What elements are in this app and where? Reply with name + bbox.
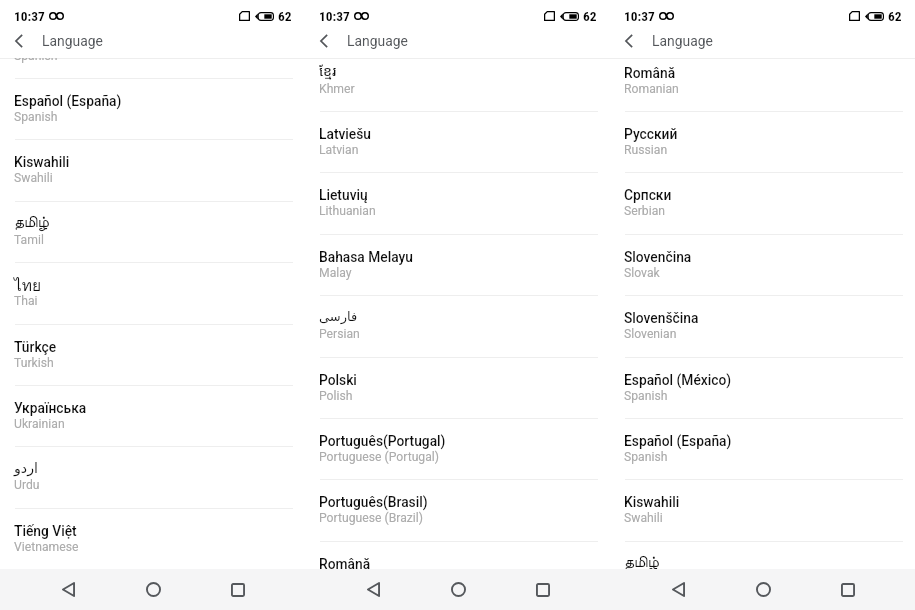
- staticText: Português(Brasil): [319, 494, 428, 510]
- button[interactable]: Back: [613, 25, 644, 56]
- staticText: Language: [42, 33, 103, 49]
- staticText: 10:37: [624, 9, 655, 25]
- button[interactable]: Kiswahili: [0, 139, 305, 200]
- staticText: ไทย: [14, 273, 42, 298]
- button[interactable]: Español (España): [0, 78, 305, 139]
- staticText: Polish: [319, 389, 353, 403]
- staticText: தமிழ்: [14, 215, 49, 231]
- staticText: Romanian: [624, 82, 679, 96]
- button[interactable]: Српски: [610, 172, 915, 233]
- staticText: Русский: [624, 126, 678, 142]
- button[interactable]: فارسی: [305, 295, 610, 356]
- staticText: Slovenian: [624, 327, 677, 341]
- staticText: Polski: [319, 372, 357, 388]
- staticText: Portuguese (Brazil): [319, 511, 423, 525]
- button[interactable]: Português(Brasil): [305, 479, 610, 540]
- staticText: 62: [278, 9, 292, 25]
- staticText: Português(Portugal): [319, 433, 446, 449]
- staticText: Ukrainian: [14, 417, 65, 431]
- staticText: Persian: [319, 327, 360, 341]
- button[interactable]: ខ្មែរ: [305, 58, 610, 111]
- staticText: Latvian: [319, 143, 359, 157]
- staticText: 62: [888, 9, 902, 25]
- staticText: Swahili: [14, 171, 53, 185]
- staticText: 62: [583, 9, 597, 25]
- staticText: Kiswahili: [14, 154, 70, 170]
- button[interactable]: Latviešu: [305, 111, 610, 172]
- staticText: اردو: [14, 460, 38, 477]
- button[interactable]: Українська: [0, 385, 305, 446]
- staticText: Slovenčina: [624, 249, 692, 265]
- button[interactable]: Polski: [305, 357, 610, 418]
- staticText: Thai: [14, 294, 38, 308]
- button[interactable]: Recent apps: [205, 569, 271, 610]
- staticText: தமிழ்: [624, 555, 659, 569]
- staticText: Spanish: [14, 110, 58, 124]
- staticText: Română: [624, 65, 676, 81]
- staticText: Language: [652, 33, 713, 49]
- staticText: Serbian: [624, 204, 665, 218]
- button[interactable]: Română: [610, 58, 915, 111]
- button[interactable]: Home: [425, 569, 491, 610]
- button[interactable]: Tiếng Việt: [0, 508, 305, 569]
- staticText: Vietnamese: [14, 540, 79, 554]
- staticText: Lietuvių: [319, 187, 368, 203]
- button[interactable]: Back: [308, 25, 339, 56]
- staticText: Slovenščina: [624, 310, 699, 326]
- staticText: Turkish: [14, 356, 54, 370]
- staticText: Spanish: [624, 389, 668, 403]
- staticText: فارسی: [319, 309, 358, 324]
- button[interactable]: Home: [120, 569, 186, 610]
- staticText: Spanish: [624, 450, 668, 464]
- staticText: Español (México): [624, 372, 732, 388]
- button[interactable]: Back: [340, 569, 406, 610]
- staticText: Lithuanian: [319, 204, 376, 218]
- staticText: Swahili: [624, 511, 663, 525]
- button[interactable]: தமிழ்: [610, 541, 915, 569]
- staticText: Khmer: [319, 82, 355, 96]
- staticText: Tiếng Việt: [14, 523, 77, 539]
- button[interactable]: Home: [730, 569, 796, 610]
- button[interactable]: Recent apps: [510, 569, 576, 610]
- staticText: ខ្មែរ: [319, 61, 337, 80]
- button[interactable]: Türkçe: [0, 324, 305, 385]
- button[interactable]: தமிழ்: [0, 201, 305, 262]
- button[interactable]: Lietuvių: [305, 172, 610, 233]
- staticText: 10:37: [319, 9, 350, 25]
- staticText: Latviešu: [319, 126, 372, 142]
- button[interactable]: Slovenščina: [610, 295, 915, 356]
- staticText: Spanish: [14, 58, 58, 63]
- button[interactable]: Back: [645, 569, 711, 610]
- button[interactable]: Slovenčina: [610, 234, 915, 295]
- staticText: Türkçe: [14, 339, 57, 355]
- button[interactable]: Română: [305, 541, 610, 569]
- button[interactable]: Español (México): [610, 357, 915, 418]
- button[interactable]: اردو: [0, 446, 305, 507]
- button[interactable]: ไทย: [0, 262, 305, 323]
- staticText: Tamil: [14, 233, 44, 247]
- staticText: Español (España): [14, 93, 122, 109]
- staticText: Slovak: [624, 266, 660, 280]
- staticText: Српски: [624, 187, 672, 203]
- staticText: Russian: [624, 143, 668, 157]
- staticText: Kiswahili: [624, 494, 680, 510]
- staticText: Urdu: [14, 478, 40, 492]
- button[interactable]: Русский: [610, 111, 915, 172]
- button[interactable]: Español (España): [610, 418, 915, 479]
- staticText: Español (España): [624, 433, 732, 449]
- button[interactable]: Português(Portugal): [305, 418, 610, 479]
- button[interactable]: Recent apps: [815, 569, 881, 610]
- staticText: Українська: [14, 400, 87, 416]
- button[interactable]: Bahasa Melayu: [305, 234, 610, 295]
- button[interactable]: Back: [35, 569, 101, 610]
- button[interactable]: Español (Estados Unidos): [0, 58, 305, 78]
- button[interactable]: Back: [3, 25, 34, 56]
- staticText: Portuguese (Portugal): [319, 450, 440, 464]
- staticText: Română: [319, 556, 371, 569]
- staticText: Bahasa Melayu: [319, 249, 413, 265]
- staticText: Malay: [319, 266, 352, 280]
- staticText: Language: [347, 33, 408, 49]
- button[interactable]: Kiswahili: [610, 479, 915, 540]
- staticText: 10:37: [14, 9, 45, 25]
